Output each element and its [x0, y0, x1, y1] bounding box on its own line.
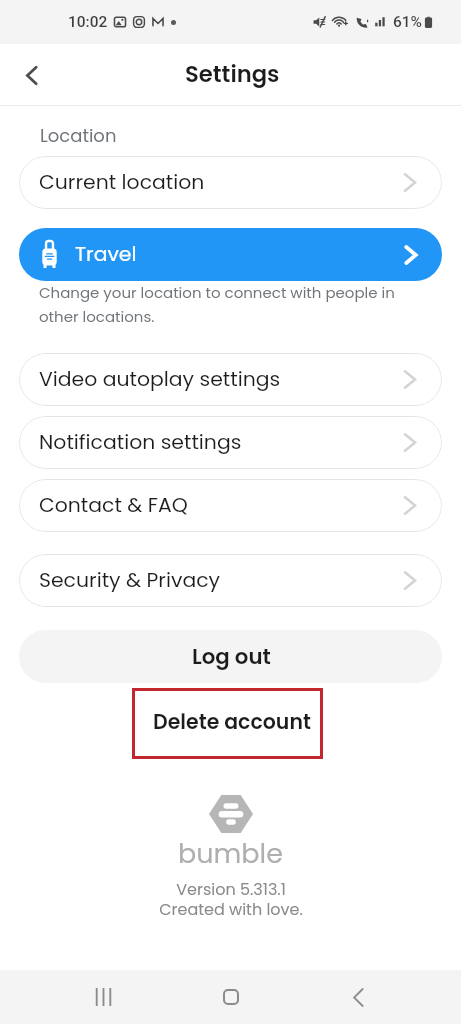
- staticText: bumble: [178, 835, 283, 873]
- button[interactable]: Contact & FAQ: [19, 479, 442, 532]
- button[interactable]: Delete account: [132, 688, 323, 759]
- button[interactable]: Log out: [19, 630, 442, 683]
- staticText: Current location: [39, 168, 205, 197]
- button[interactable]: Home: [207, 973, 255, 1021]
- staticText: 10:02: [68, 13, 108, 31]
- staticText: Location: [40, 123, 117, 148]
- staticText: Contact & FAQ: [39, 491, 188, 520]
- staticText: Security & Privacy: [39, 566, 221, 595]
- staticText: 61%: [393, 13, 423, 31]
- staticText: Notification settings: [39, 428, 242, 457]
- staticText: Version 5.313.1 Created with love.: [159, 878, 303, 921]
- staticText: Travel: [75, 240, 137, 269]
- staticText: Settings: [185, 58, 280, 90]
- button[interactable]: Current location: [19, 156, 442, 209]
- staticText: Change your location to connect with peo…: [39, 282, 395, 327]
- button[interactable]: Video autoplay settings: [19, 353, 442, 406]
- staticText: Delete account: [153, 707, 311, 736]
- button[interactable]: Security & Privacy: [19, 554, 442, 607]
- button[interactable]: Recent apps: [79, 973, 127, 1021]
- staticText: Video autoplay settings: [39, 365, 281, 394]
- button[interactable]: Back: [334, 973, 382, 1021]
- button[interactable]: Notification settings: [19, 416, 442, 469]
- button[interactable]: Travel: [19, 228, 442, 281]
- button[interactable]: Back: [9, 53, 53, 97]
- staticText: Log out: [192, 642, 271, 672]
